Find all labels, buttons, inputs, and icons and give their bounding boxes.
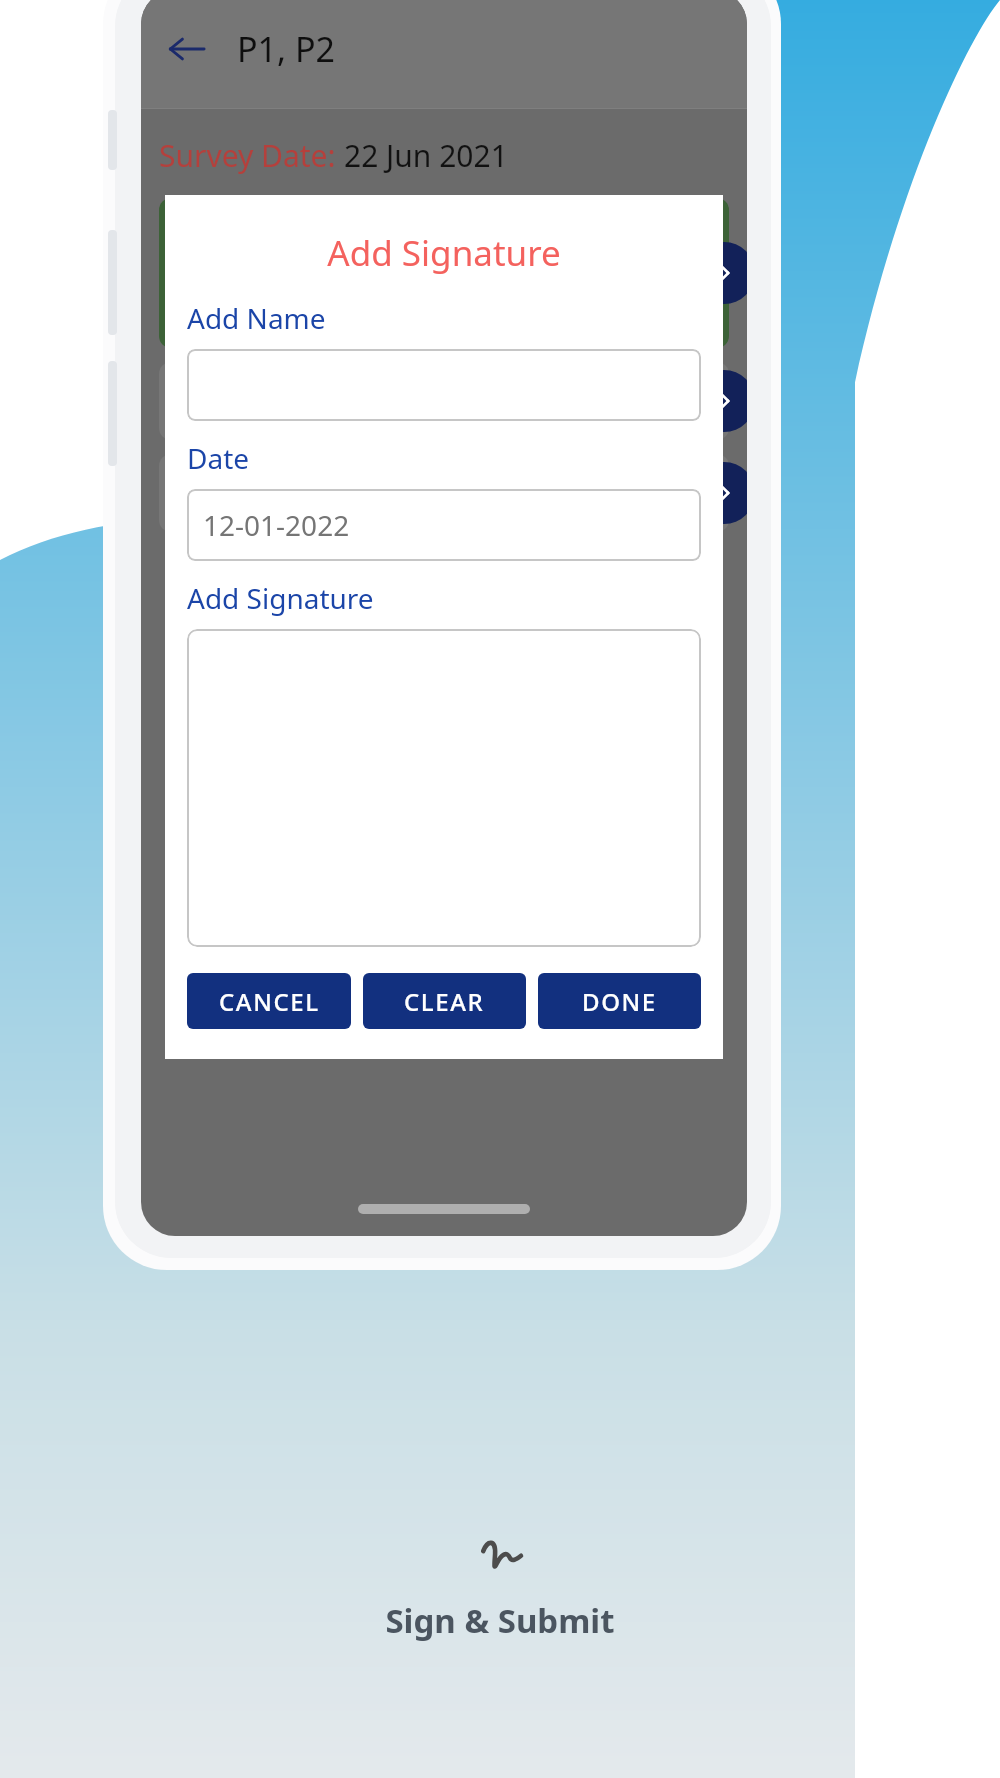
button[interactable]: Open Dust bbox=[693, 370, 747, 432]
button[interactable]: Name input bbox=[187, 349, 701, 421]
staticText: Add Name bbox=[187, 299, 326, 337]
staticText: P1, P2 bbox=[237, 26, 335, 72]
button[interactable]: CANCEL bbox=[187, 973, 351, 1029]
staticText: CANCEL bbox=[219, 985, 320, 1018]
staticText: 22 Jun 2021 bbox=[344, 135, 508, 176]
button[interactable]: DONE bbox=[538, 973, 701, 1029]
staticText: Survey Date: bbox=[159, 135, 344, 176]
button[interactable]: Dust bbox=[159, 362, 729, 440]
button[interactable]: Pre works bbox=[159, 198, 729, 348]
staticText: DONE bbox=[582, 985, 657, 1018]
staticText: 12-01-2022 bbox=[203, 506, 350, 544]
staticText: Date bbox=[187, 439, 250, 477]
staticText: CLEAR bbox=[404, 985, 485, 1018]
button[interactable]: Open Post works bbox=[693, 462, 747, 524]
button[interactable]: Open Pre works bbox=[693, 242, 747, 304]
button[interactable]: 12-01-2022 bbox=[187, 489, 701, 561]
button[interactable]: Back bbox=[155, 17, 219, 81]
staticText: Add Signature bbox=[187, 579, 374, 617]
staticText: Dust bbox=[177, 384, 245, 426]
button[interactable]: CLEAR bbox=[363, 973, 526, 1029]
button[interactable]: Signature pad bbox=[187, 629, 701, 947]
staticText: Sign & Submit bbox=[385, 1598, 615, 1643]
staticText: Add Signature bbox=[187, 229, 701, 277]
button[interactable]: Post works bbox=[159, 454, 729, 532]
staticText: Post works bbox=[177, 476, 336, 518]
